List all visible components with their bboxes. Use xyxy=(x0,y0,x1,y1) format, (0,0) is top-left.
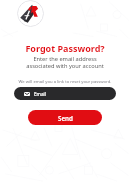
staticText: Enter the email address associated with … xyxy=(0,55,130,70)
staticText: Email xyxy=(34,91,47,97)
button[interactable]: Email xyxy=(14,87,116,100)
staticText: We will email you a link to reset your p… xyxy=(0,79,130,85)
button[interactable]: Send xyxy=(28,110,102,125)
staticText: Send xyxy=(58,114,73,122)
staticText: Forgot Password? xyxy=(0,42,130,54)
